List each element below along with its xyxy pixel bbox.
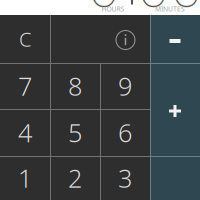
staticText: 1 [18,161,32,195]
button[interactable]: 7 [0,63,50,109]
button[interactable]: 8 [50,63,100,109]
button[interactable]: 9 [100,63,150,109]
staticText: 0 [87,0,120,22]
button[interactable]: 3 [100,156,150,200]
button[interactable]: Info [50,15,150,63]
staticText: 3 [118,161,132,195]
staticText: 8 [68,69,82,103]
button[interactable]: Start [150,156,200,200]
button[interactable]: 2 [50,156,100,200]
button[interactable]: Decrease [150,15,200,63]
button[interactable]: 1 [0,156,50,200]
button[interactable]: 6 [100,109,150,156]
staticText: HOURS [101,5,124,13]
staticText: 6 [118,116,132,149]
button[interactable]: C [0,15,50,63]
staticText: 9 [118,69,132,103]
staticText: 00 [137,0,200,22]
button[interactable]: 4 [0,109,50,156]
button[interactable]: 5 [50,109,100,156]
button[interactable]: Increase [150,63,200,156]
staticText: MINUTES [155,5,185,13]
staticText: 4 [18,116,32,149]
staticText: 7 [18,69,32,103]
staticText: 2 [68,161,82,195]
staticText: C [19,26,31,52]
staticText: 5 [68,116,82,149]
